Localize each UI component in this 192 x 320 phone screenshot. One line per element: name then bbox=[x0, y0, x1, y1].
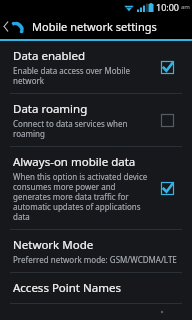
staticText: 10:00 bbox=[156, 1, 180, 13]
button[interactable]: Data roaming bbox=[0, 94, 192, 146]
staticText: am bbox=[181, 3, 190, 11]
button[interactable]: Always-on mobile data bbox=[0, 147, 192, 229]
button[interactable]: Data enabled bbox=[0, 41, 192, 93]
button[interactable]: Access Point Names bbox=[0, 273, 192, 303]
staticText: When this option is activated device con… bbox=[13, 171, 155, 222]
button[interactable]: Unchecked bbox=[161, 311, 174, 313]
staticText: Data roaming bbox=[13, 101, 88, 117]
staticText: Mobile network settings bbox=[32, 19, 157, 34]
button[interactable]: Checked bbox=[161, 182, 174, 195]
button[interactable]: Back bbox=[0, 14, 192, 39]
staticText: Preferred network mode: GSM/WCDMA/LTE bbox=[13, 254, 177, 265]
staticText: Data enabled bbox=[13, 48, 86, 64]
button[interactable]: Unchecked bbox=[161, 114, 174, 127]
staticText: Enable data access over Mobile network bbox=[13, 65, 155, 86]
button[interactable]: Network Mode bbox=[0, 230, 192, 272]
staticText: Always-on mobile data bbox=[13, 154, 136, 170]
staticText: Access Point Names bbox=[13, 280, 121, 296]
staticText: Connect to data services when roaming bbox=[13, 118, 155, 139]
staticText: Network Mode bbox=[13, 237, 94, 253]
button[interactable]: Checked bbox=[161, 61, 174, 74]
